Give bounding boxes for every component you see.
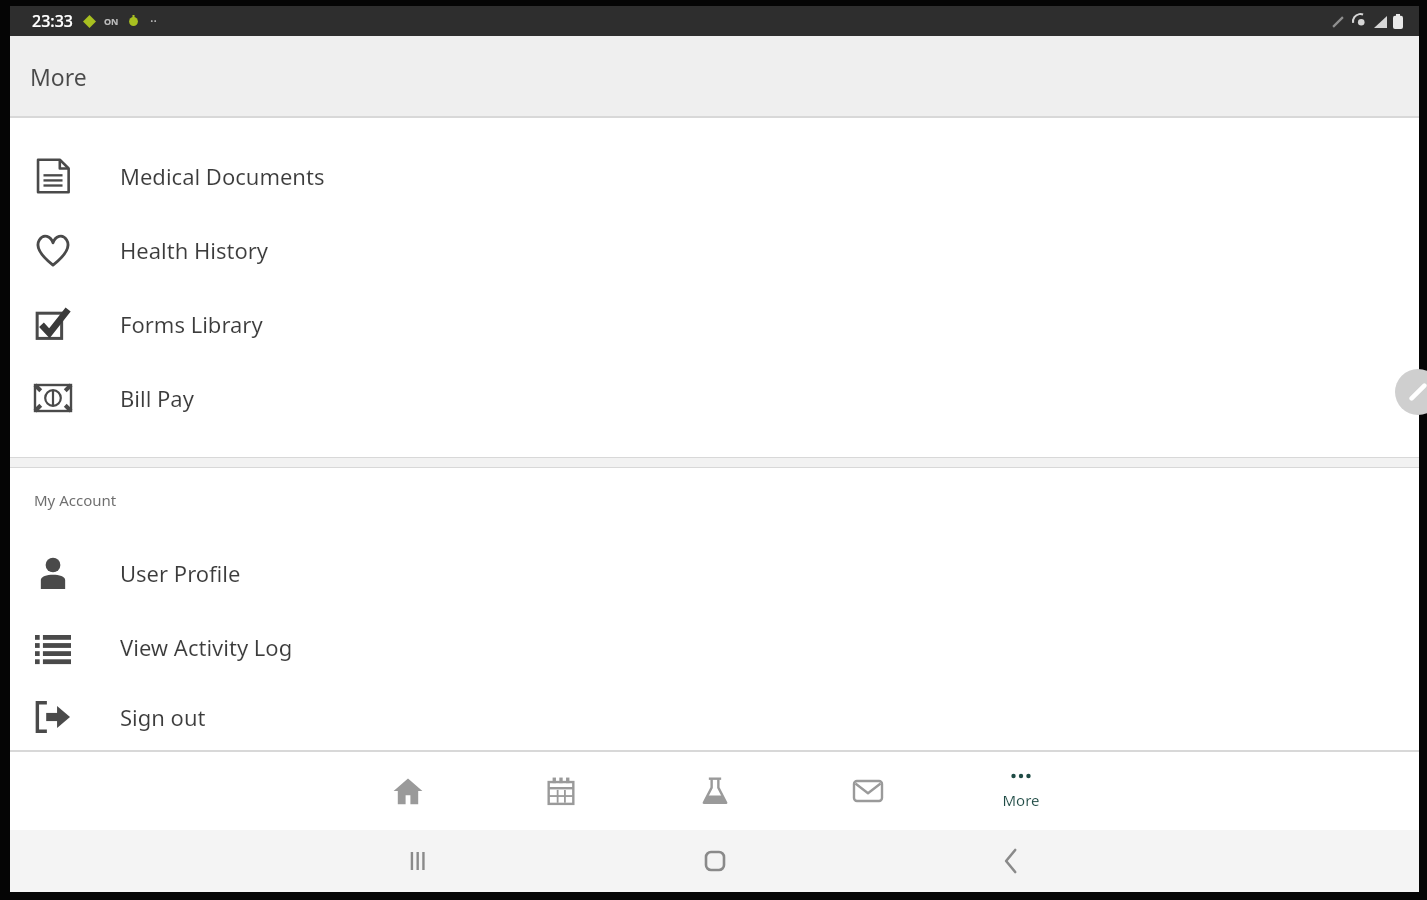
button[interactable]: Health History [10, 213, 1419, 287]
button[interactable]: Back [983, 833, 1039, 889]
button[interactable]: User Profile [10, 536, 1419, 610]
button[interactable]: Home [353, 752, 463, 830]
staticText: Medical Documents [120, 161, 325, 191]
button[interactable]: Home [687, 833, 743, 889]
button[interactable]: More [966, 752, 1076, 830]
button[interactable]: Edit edge panel [1395, 369, 1427, 415]
staticText: View Activity Log [120, 632, 293, 662]
staticText: ON [104, 15, 119, 27]
staticText: ·· [150, 12, 157, 30]
staticText: 23:33 [32, 10, 73, 32]
button[interactable]: Messages [813, 752, 923, 830]
staticText: User Profile [120, 558, 241, 588]
staticText: More [30, 61, 87, 92]
button[interactable]: View Activity Log [10, 610, 1419, 684]
staticText: Bill Pay [120, 383, 194, 413]
button[interactable]: Lab Results [660, 752, 770, 830]
button[interactable]: Sign out [10, 684, 1419, 750]
staticText: My Account [34, 490, 117, 510]
button[interactable]: Recents [390, 833, 446, 889]
button[interactable]: Appointments [506, 752, 616, 830]
staticText: Health History [120, 235, 269, 265]
staticText: More [1002, 790, 1040, 810]
staticText: Sign out [120, 702, 206, 732]
staticText: Forms Library [120, 309, 263, 339]
button[interactable]: Forms Library [10, 287, 1419, 361]
button[interactable]: Bill Pay [10, 361, 1419, 435]
button[interactable]: Medical Documents [10, 139, 1419, 213]
